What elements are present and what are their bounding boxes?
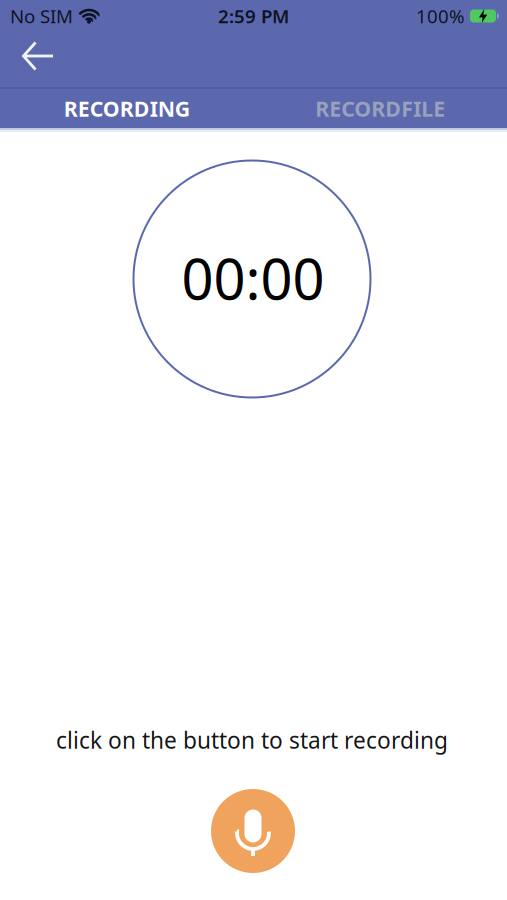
button[interactable]: RECORDFILE [253,89,507,128]
button[interactable]: Start recording [211,789,295,873]
staticText: RECORDFILE [315,94,445,123]
button[interactable]: Back [0,32,53,87]
staticText: RECORDING [64,94,190,123]
staticText: 100% [416,4,465,28]
staticText: No SIM [10,4,73,28]
staticText: click on the button to start recording [56,725,448,755]
button[interactable]: RECORDING [0,89,253,128]
staticText: 2:59 PM [218,4,289,28]
staticText: 00:00 [181,241,324,315]
